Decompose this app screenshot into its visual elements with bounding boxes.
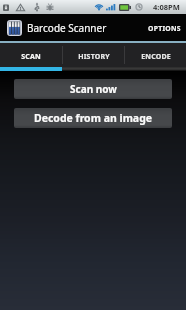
- button[interactable]: ENCODE: [125, 43, 186, 67]
- staticText: ENCODE: [141, 52, 171, 62]
- button[interactable]: OPTIONS: [141, 14, 186, 41]
- staticText: Decode from an image: [34, 111, 153, 125]
- button[interactable]: SCAN: [0, 43, 62, 67]
- button[interactable]: HISTORY: [63, 43, 124, 67]
- staticText: 4:08PM: [153, 2, 180, 12]
- button[interactable]: Scan now: [14, 79, 172, 99]
- staticText: Barcode Scanner: [27, 21, 107, 35]
- staticText: HISTORY: [78, 52, 110, 62]
- button[interactable]: Decode from an image: [14, 108, 172, 128]
- staticText: SCAN: [21, 52, 41, 62]
- staticText: Scan now: [70, 82, 117, 96]
- staticText: OPTIONS: [148, 24, 181, 33]
